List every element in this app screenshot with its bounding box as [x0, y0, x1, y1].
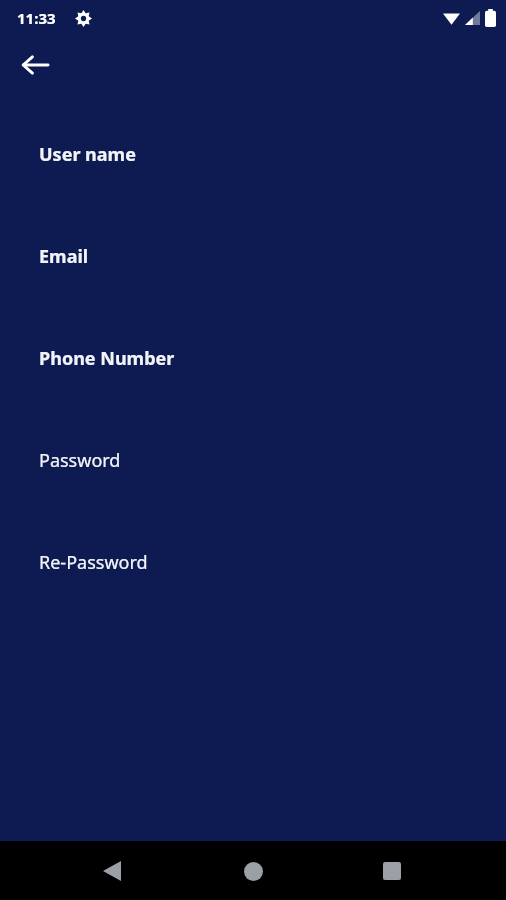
button[interactable]: Back: [11, 41, 59, 89]
button[interactable]: Re-Password: [0, 548, 506, 650]
staticText: 11:33: [17, 8, 56, 28]
staticText: Password: [39, 448, 121, 473]
button[interactable]: Home: [229, 847, 277, 895]
staticText: Re-Password: [39, 550, 148, 575]
button[interactable]: Recent apps: [368, 847, 416, 895]
staticText: Phone Number: [39, 346, 175, 371]
button[interactable]: Password: [0, 446, 506, 548]
button[interactable]: Phone Number: [0, 344, 506, 446]
staticText: User name: [39, 142, 136, 167]
button[interactable]: Back: [88, 847, 136, 895]
button[interactable]: User name: [0, 140, 506, 242]
button[interactable]: Email: [0, 242, 506, 344]
staticText: Email: [39, 244, 89, 269]
